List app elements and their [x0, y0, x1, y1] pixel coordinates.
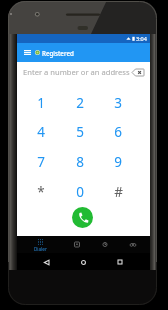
button[interactable]: 0 — [61, 177, 99, 206]
staticText: # — [114, 183, 123, 201]
button[interactable]: History — [93, 238, 117, 250]
staticText: Registered — [42, 49, 74, 57]
staticText: 7 — [37, 153, 45, 171]
button[interactable]: Recent apps — [112, 254, 128, 270]
button[interactable]: * — [22, 177, 60, 206]
staticText: 0 — [76, 183, 84, 201]
button[interactable]: Backspace — [130, 65, 145, 79]
button[interactable]: 7 — [22, 147, 60, 176]
staticText: 3 — [114, 94, 122, 112]
button[interactable]: 3 — [99, 88, 137, 117]
button[interactable]: # — [99, 177, 137, 206]
button[interactable]: 9 — [99, 147, 137, 176]
button[interactable]: Dialer — [17, 237, 64, 252]
button[interactable]: 6 — [99, 117, 137, 146]
button[interactable]: 1 — [22, 88, 60, 117]
button[interactable]: 2 — [61, 88, 99, 117]
staticText: Dialer — [34, 246, 47, 252]
staticText: 4 — [37, 123, 45, 141]
staticText: 8 — [76, 153, 84, 171]
button[interactable]: 8 — [61, 147, 99, 176]
staticText: * — [37, 183, 45, 201]
button[interactable]: Voicemail — [121, 238, 145, 250]
staticText: 3:04 — [136, 35, 147, 42]
button[interactable]: 5 — [61, 117, 99, 146]
button[interactable]: Contacts — [65, 238, 89, 250]
staticText: Enter a number or an address — [23, 67, 130, 77]
button[interactable]: Back — [38, 254, 54, 270]
button[interactable]: 4 — [22, 117, 60, 146]
button[interactable]: Home — [75, 254, 91, 270]
staticText: 5 — [76, 123, 84, 141]
button[interactable]: Call — [72, 207, 93, 228]
staticText: 2 — [76, 94, 84, 112]
staticText: 9 — [114, 153, 122, 171]
staticText: 6 — [114, 123, 122, 141]
button[interactable]: Open navigation menu — [22, 45, 33, 60]
staticText: 1 — [37, 94, 45, 112]
